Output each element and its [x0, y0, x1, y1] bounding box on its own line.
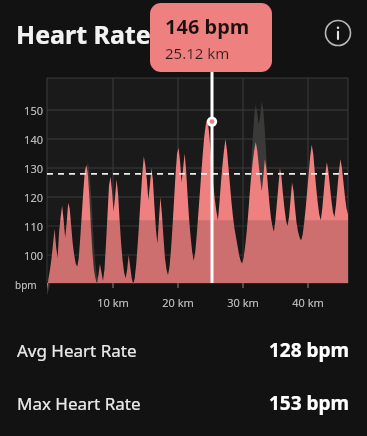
staticText: 128 bpm [269, 337, 350, 363]
button[interactable]: Avg Heart Rate [0, 332, 367, 368]
staticText: 120 [17, 190, 43, 205]
staticText: 10 km [91, 295, 135, 310]
staticText: 153 bpm [269, 390, 350, 416]
staticText: 110 [17, 219, 43, 234]
staticText: Max Heart Rate [17, 392, 141, 415]
staticText: 40 km [286, 295, 330, 310]
staticText: 150 [17, 103, 43, 118]
staticText: 30 km [221, 295, 265, 310]
button[interactable]: Max Heart Rate [0, 385, 367, 421]
button[interactable]: Information [324, 19, 352, 47]
staticText: 100 [17, 248, 43, 263]
staticText: Avg Heart Rate [17, 339, 137, 362]
staticText: 146 bpm [165, 13, 250, 40]
button[interactable]: 146 bpm [150, 3, 272, 72]
staticText: 140 [17, 132, 43, 147]
staticText: 130 [17, 161, 43, 176]
staticText: bpm [15, 278, 37, 292]
staticText: 25.12 km [165, 43, 230, 63]
staticText: 20 km [156, 295, 200, 310]
staticText: Heart Rate [16, 17, 151, 51]
